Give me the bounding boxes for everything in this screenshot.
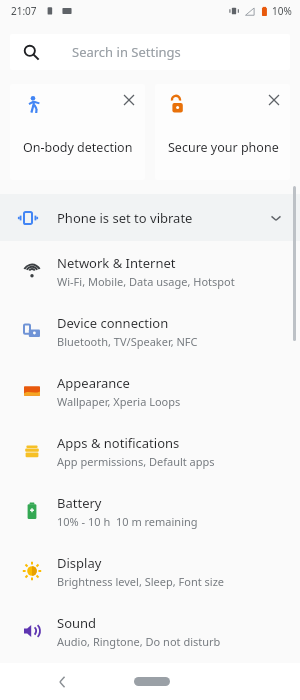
staticText: Secure your phone <box>168 139 279 156</box>
button[interactable]: Dismiss <box>265 91 283 109</box>
staticText: 21:07 <box>11 4 37 18</box>
button[interactable]: Device connection <box>0 301 300 361</box>
staticText: Appearance <box>57 374 130 392</box>
staticText: Battery <box>57 494 102 512</box>
staticText: Audio, Ringtone, Do not disturb <box>57 634 221 649</box>
staticText: Bluetooth, TV/Speaker, NFC <box>57 334 198 349</box>
button[interactable]: Search in Settings <box>10 34 290 70</box>
staticText: 10% <box>272 4 292 18</box>
button[interactable]: Dismiss <box>120 91 138 109</box>
staticText: 10% - 10 h 10 m remaining <box>57 514 198 529</box>
button[interactable]: Dismiss <box>155 84 290 180</box>
button[interactable]: Apps & notifications <box>0 421 300 481</box>
staticText: Search in Settings <box>72 43 181 61</box>
staticText: Brightness level, Sleep, Font size <box>57 574 225 589</box>
button[interactable]: Sound <box>0 601 300 661</box>
button[interactable]: Home <box>134 677 170 686</box>
staticText: Phone is set to vibrate <box>57 209 193 227</box>
staticText: Display <box>57 554 102 572</box>
staticText: Wi-Fi, Mobile, Data usage, Hotspot <box>57 274 235 289</box>
staticText: Wallpaper, Xperia Loops <box>57 394 181 409</box>
button[interactable]: Battery <box>0 481 300 541</box>
staticText: Network & Internet <box>57 254 176 272</box>
button[interactable]: Network & Internet <box>0 241 300 301</box>
button[interactable]: Phone is set to vibrate <box>0 194 300 241</box>
button[interactable]: Appearance <box>0 361 300 421</box>
staticText: App permissions, Default apps <box>57 454 215 469</box>
staticText: Device connection <box>57 314 169 332</box>
staticText: On-body detection <box>23 139 133 156</box>
staticText: Sound <box>57 614 97 632</box>
button[interactable]: Dismiss <box>10 84 145 180</box>
button[interactable]: Display <box>0 541 300 601</box>
button[interactable]: Back <box>50 669 76 695</box>
staticText: Apps & notifications <box>57 434 180 452</box>
